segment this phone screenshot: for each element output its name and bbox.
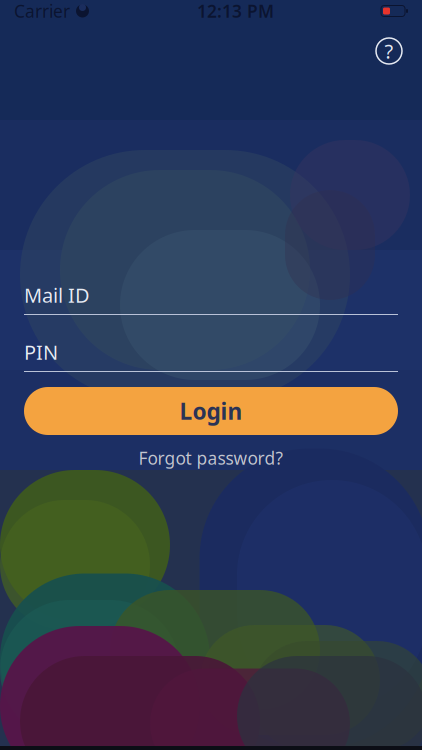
staticText: ? xyxy=(384,38,393,64)
staticText: 12:13 PM xyxy=(197,0,274,22)
staticText: PIN xyxy=(24,339,58,365)
button[interactable]: Help xyxy=(367,29,411,73)
staticText: Mail ID xyxy=(24,282,90,308)
staticText: Login xyxy=(179,396,242,426)
button[interactable]: Login xyxy=(24,387,398,435)
button[interactable]: Forgot password? xyxy=(24,447,398,469)
staticText: Forgot password? xyxy=(138,446,283,469)
staticText: Carrier xyxy=(14,0,70,22)
